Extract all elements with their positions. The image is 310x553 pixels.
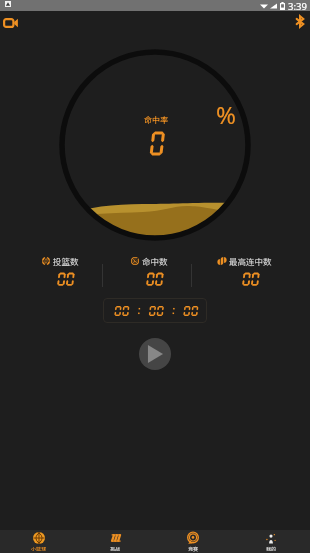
button[interactable]: Start [139,338,171,370]
staticText: 竞赛 [188,545,199,552]
button[interactable]: 命中数 [101,255,197,288]
button[interactable]: Record video [3,16,19,30]
button[interactable]: 挑战 [77,530,154,553]
staticText: 命中率 [144,114,168,126]
staticText: 小篮球 [31,545,47,552]
staticText: % [216,98,236,131]
button[interactable]: 投篮数 [12,255,108,288]
staticText: 3:39 [288,0,307,11]
button[interactable]: 竞赛 [154,530,232,553]
button[interactable]: Bluetooth [294,15,306,28]
button[interactable] [103,298,207,323]
staticText: 投篮数 [53,255,79,267]
button[interactable]: 小篮球 [0,530,77,553]
button[interactable]: 我的 [232,530,310,553]
staticText: 命中数 [142,255,168,267]
staticText: 最高连中数 [229,255,272,267]
staticText: 我的 [266,545,277,552]
staticText: 挑战 [110,545,121,552]
button[interactable]: 最高连中数 [197,255,293,288]
